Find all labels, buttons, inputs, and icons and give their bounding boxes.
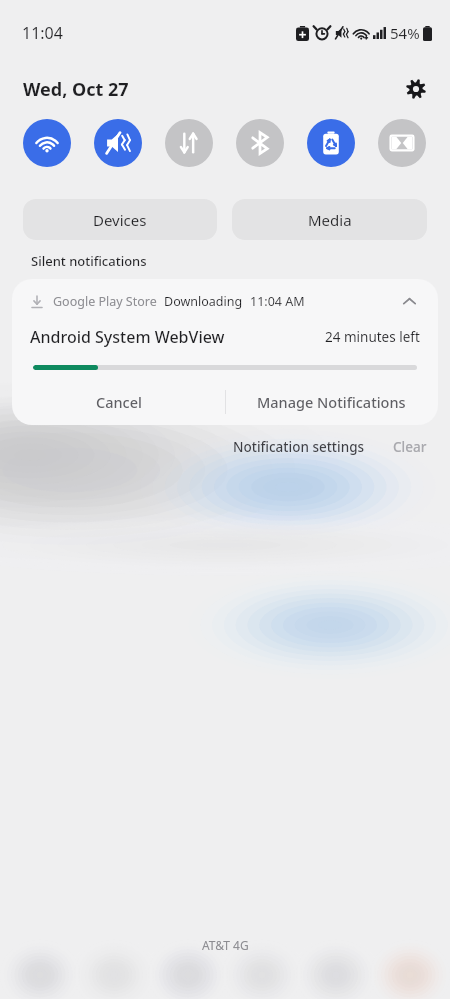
staticText: Google Play Store [53,293,157,310]
staticText: Notification settings [233,438,365,456]
staticText: 24 minutes left [325,328,420,346]
button[interactable]: Media [232,199,427,240]
staticText: AT&T 4G [202,937,249,953]
button[interactable]: Settings [398,71,434,107]
button[interactable]: Collapse [396,288,422,314]
button[interactable]: Wi-Fi [23,119,71,167]
staticText: Cancel [96,392,142,412]
staticText: Downloading [164,293,243,310]
button[interactable]: Mobile data [165,119,213,167]
staticText: Media [308,210,352,230]
button[interactable]: Ring mode [94,119,142,167]
button[interactable]: Bluetooth [236,119,284,167]
staticText: 54% [390,23,420,43]
button[interactable]: Battery Saver [307,119,355,167]
button[interactable]: Google Play Store [12,279,438,425]
staticText: 11:04 [22,22,63,44]
button[interactable]: Clear [389,436,431,458]
staticText: Clear [393,438,427,456]
button[interactable]: Cancel [12,379,225,425]
staticText: Android System WebView [30,326,225,348]
button[interactable]: Devices [23,199,217,240]
staticText: Devices [93,210,147,230]
button[interactable]: Notification settings [229,436,369,458]
staticText: 11:04 AM [250,293,305,310]
staticText: Wed, Oct 27 [23,77,129,102]
button[interactable]: Dolby Atmos [378,119,426,167]
staticText: Manage Notifications [257,392,406,412]
button[interactable]: Manage Notifications [225,379,438,425]
staticText: Silent notifications [31,252,147,270]
